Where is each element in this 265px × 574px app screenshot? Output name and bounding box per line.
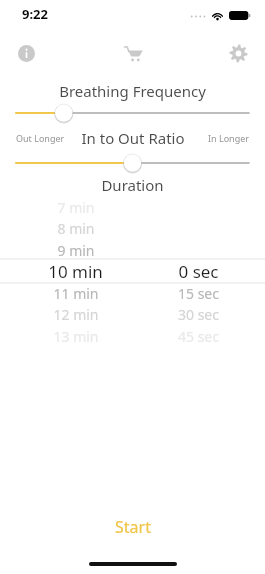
staticText: 0 sec — [178, 260, 219, 282]
staticText: In Longer — [207, 132, 249, 144]
staticText: 13 min — [53, 327, 99, 346]
staticText: Duration — [0, 175, 265, 195]
staticText: 15 sec — [178, 284, 219, 303]
staticText: 12 min — [53, 305, 99, 324]
button[interactable]: Duration picker — [0, 205, 265, 340]
staticText: In to Out Ratio — [81, 128, 185, 148]
button[interactable]: Info — [12, 39, 40, 67]
button[interactable]: Store — [118, 38, 148, 68]
staticText: 30 sec — [178, 305, 219, 324]
staticText: Breathing Frequency — [0, 81, 265, 101]
staticText: 7 min — [57, 198, 95, 217]
staticText: Out Longer — [16, 132, 65, 144]
staticText: 9 min — [57, 241, 95, 260]
button[interactable]: Settings — [223, 38, 253, 68]
button[interactable]: Slider — [0, 102, 265, 124]
staticText: 11 min — [53, 284, 99, 303]
button[interactable]: Start — [0, 512, 265, 542]
staticText: 45 sec — [178, 327, 219, 346]
staticText: 8 min — [57, 219, 95, 238]
staticText: 9:22 — [22, 5, 48, 23]
staticText: Start — [115, 516, 151, 538]
button[interactable]: Slider — [0, 152, 265, 174]
staticText: 10 min — [48, 260, 103, 282]
